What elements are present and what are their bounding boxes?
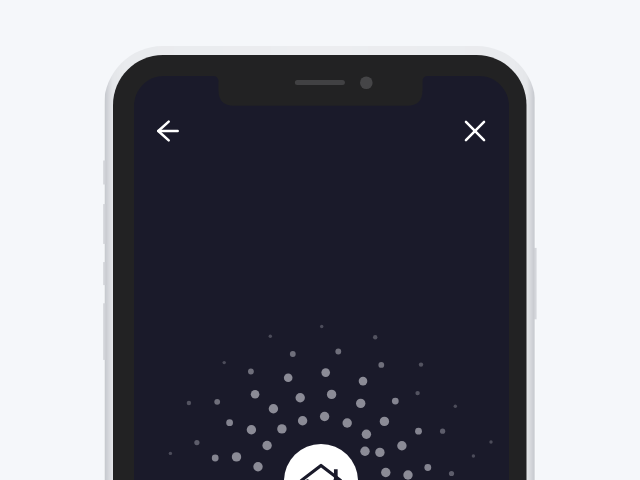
button[interactable]: Close bbox=[453, 109, 497, 153]
button[interactable]: Home bbox=[284, 444, 358, 480]
button[interactable]: Back bbox=[146, 109, 190, 153]
